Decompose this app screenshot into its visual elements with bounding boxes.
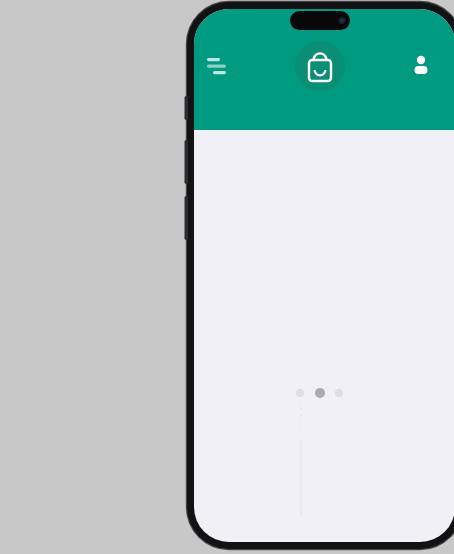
- button[interactable]: Shop: [295, 41, 345, 91]
- button[interactable]: Open navigation menu: [203, 52, 231, 80]
- button[interactable]: Profile: [408, 52, 436, 80]
